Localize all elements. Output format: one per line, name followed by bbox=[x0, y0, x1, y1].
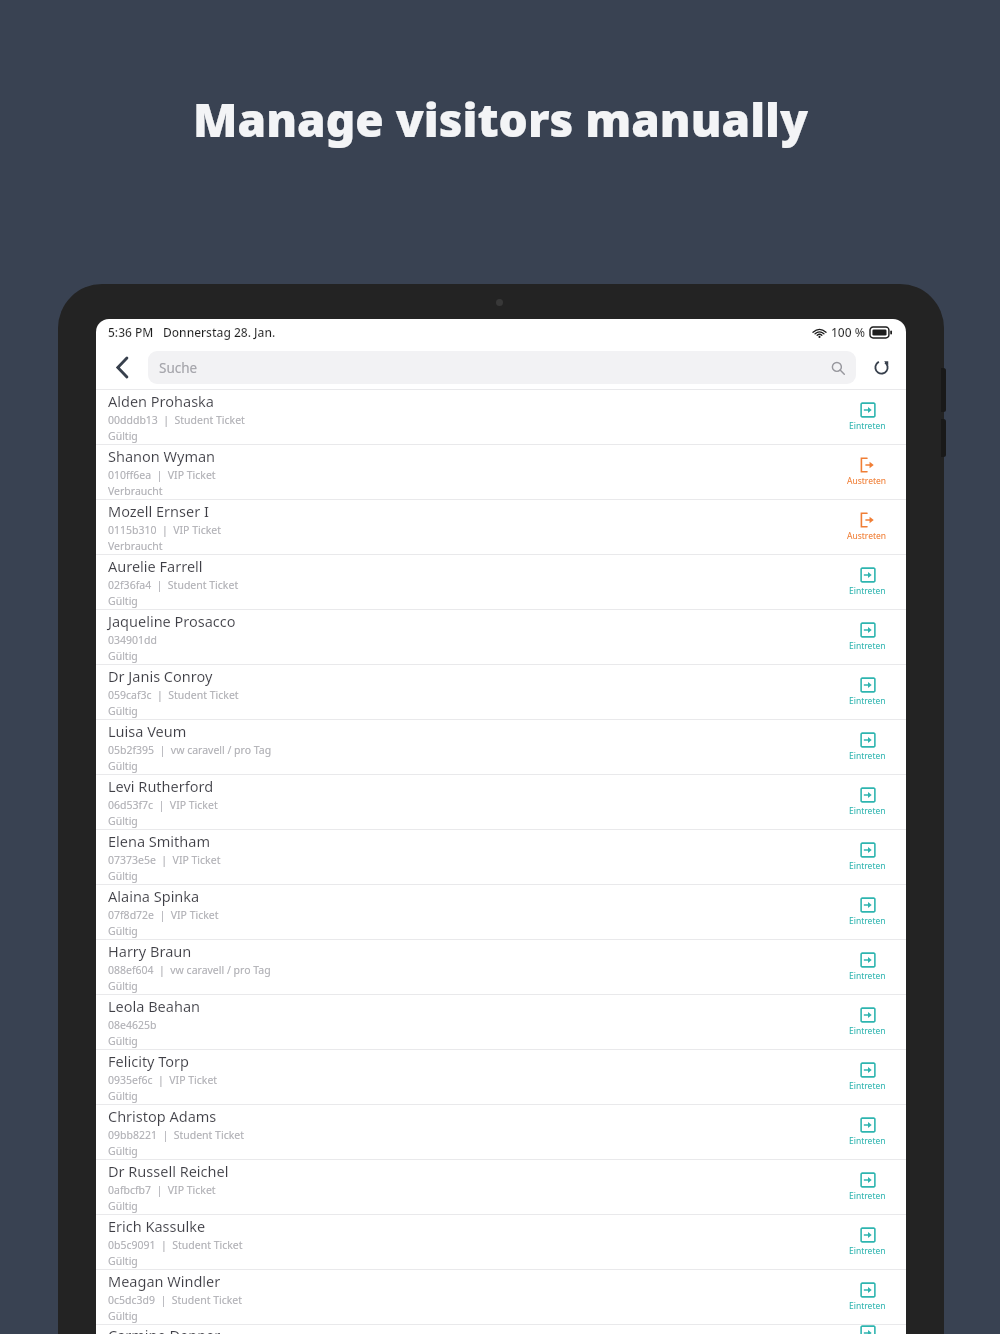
staticText: Austreten bbox=[847, 475, 887, 487]
staticText: Eintreten bbox=[849, 860, 886, 872]
staticText: Aurelie Farrell bbox=[108, 556, 203, 576]
button[interactable]: Eintreten bbox=[828, 1160, 906, 1214]
staticText: 07373e5e | VIP Ticket bbox=[108, 853, 221, 867]
staticText: Gültig bbox=[108, 1034, 138, 1048]
button[interactable]: Eintreten bbox=[828, 555, 906, 609]
button[interactable]: Luisa Veum bbox=[96, 720, 906, 775]
staticText: 100 % bbox=[831, 324, 865, 340]
staticText: 06d53f7c | VIP Ticket bbox=[108, 798, 218, 812]
button[interactable]: Eintreten bbox=[828, 390, 906, 444]
button[interactable]: Erich Kassulke bbox=[96, 1215, 906, 1270]
staticText: Gültig bbox=[108, 1199, 138, 1213]
staticText: Erich Kassulke bbox=[108, 1216, 206, 1236]
button[interactable]: Eintreten bbox=[828, 1215, 906, 1269]
button[interactable]: Dr Janis Conroy bbox=[96, 665, 906, 720]
staticText: Felicity Torp bbox=[108, 1051, 190, 1071]
button[interactable]: Shanon Wyman bbox=[96, 445, 906, 500]
button[interactable]: Eintreten bbox=[828, 1050, 906, 1104]
staticText: 02f36fa4 | Student Ticket bbox=[108, 578, 239, 592]
button[interactable]: Leola Beahan bbox=[96, 995, 906, 1050]
staticText: 088ef604 | vw caravell / pro Tag bbox=[108, 963, 271, 977]
staticText: 059caf3c | Student Ticket bbox=[108, 688, 239, 702]
button[interactable]: Refresh bbox=[856, 345, 906, 389]
staticText: Shanon Wyman bbox=[108, 446, 216, 466]
staticText: 034901dd bbox=[108, 633, 157, 647]
staticText: 0115b310 | VIP Ticket bbox=[108, 523, 222, 537]
button[interactable]: Carmine Depper bbox=[96, 1325, 906, 1334]
staticText: Gültig bbox=[108, 814, 138, 828]
button[interactable]: Eintreten bbox=[828, 885, 906, 939]
staticText: 010ff6ea | VIP Ticket bbox=[108, 468, 216, 482]
button[interactable]: Suche bbox=[148, 351, 856, 384]
staticText: Eintreten bbox=[849, 1080, 886, 1092]
button[interactable]: Elena Smitham bbox=[96, 830, 906, 885]
button[interactable]: Dr Russell Reichel bbox=[96, 1160, 906, 1215]
button[interactable]: Levi Rutherford bbox=[96, 775, 906, 830]
staticText: Alaina Spinka bbox=[108, 886, 200, 906]
staticText: Gültig bbox=[108, 1144, 138, 1158]
button[interactable]: Eintreten bbox=[828, 1325, 906, 1334]
staticText: Mozell Ernser I bbox=[108, 501, 209, 521]
button[interactable]: Alaina Spinka bbox=[96, 885, 906, 940]
button[interactable]: Eintreten bbox=[828, 1105, 906, 1159]
staticText: Gültig bbox=[108, 1254, 138, 1268]
button[interactable]: Eintreten bbox=[828, 940, 906, 994]
staticText: Austreten bbox=[847, 530, 887, 542]
button[interactable]: Eintreten bbox=[828, 610, 906, 664]
staticText: Verbraucht bbox=[108, 539, 163, 553]
staticText: Eintreten bbox=[849, 750, 886, 762]
staticText: Levi Rutherford bbox=[108, 776, 214, 796]
button[interactable]: Eintreten bbox=[828, 995, 906, 1049]
staticText: Elena Smitham bbox=[108, 831, 210, 851]
button[interactable]: Aurelie Farrell bbox=[96, 555, 906, 610]
staticText: Eintreten bbox=[849, 420, 886, 432]
staticText: Eintreten bbox=[849, 915, 886, 927]
staticText: Dr Russell Reichel bbox=[108, 1161, 229, 1181]
staticText: 0b5c9091 | Student Ticket bbox=[108, 1238, 243, 1252]
button[interactable]: Jaqueline Prosacco bbox=[96, 610, 906, 665]
button[interactable]: Eintreten bbox=[828, 665, 906, 719]
staticText: Gültig bbox=[108, 924, 138, 938]
staticText: 00dddb13 | Student Ticket bbox=[108, 413, 245, 427]
staticText: 08e4625b bbox=[108, 1018, 157, 1032]
button[interactable]: Harry Braun bbox=[96, 940, 906, 995]
staticText: Gültig bbox=[108, 429, 138, 443]
staticText: Suche bbox=[159, 359, 198, 377]
button[interactable]: Eintreten bbox=[828, 775, 906, 829]
staticText: Dr Janis Conroy bbox=[108, 666, 213, 686]
button[interactable]: Mozell Ernser I bbox=[96, 500, 906, 555]
staticText: Gültig bbox=[108, 759, 138, 773]
button[interactable]: Eintreten bbox=[828, 1270, 906, 1324]
staticText: Eintreten bbox=[849, 970, 886, 982]
staticText: 09bb8221 | Student Ticket bbox=[108, 1128, 244, 1142]
button[interactable]: Alden Prohaska bbox=[96, 390, 906, 445]
staticText: Leola Beahan bbox=[108, 996, 200, 1016]
staticText: 5:36 PM bbox=[108, 324, 154, 340]
staticText: Gültig bbox=[108, 979, 138, 993]
button[interactable]: Austreten bbox=[828, 500, 906, 554]
button[interactable]: Eintreten bbox=[828, 830, 906, 884]
button[interactable]: Felicity Torp bbox=[96, 1050, 906, 1105]
button[interactable]: Christop Adams bbox=[96, 1105, 906, 1160]
staticText: Eintreten bbox=[849, 805, 886, 817]
button[interactable]: Meagan Windler bbox=[96, 1270, 906, 1325]
staticText: Carmine Depper bbox=[108, 1325, 221, 1334]
staticText: Eintreten bbox=[849, 1025, 886, 1037]
button[interactable]: Back bbox=[96, 345, 148, 389]
staticText: Eintreten bbox=[849, 695, 886, 707]
staticText: Eintreten bbox=[849, 640, 886, 652]
staticText: Verbraucht bbox=[108, 484, 163, 498]
staticText: Harry Braun bbox=[108, 941, 192, 961]
staticText: Luisa Veum bbox=[108, 721, 187, 741]
staticText: Eintreten bbox=[849, 1135, 886, 1147]
staticText: Gültig bbox=[108, 594, 138, 608]
button[interactable]: Eintreten bbox=[828, 720, 906, 774]
staticText: Gültig bbox=[108, 704, 138, 718]
button[interactable]: Austreten bbox=[828, 445, 906, 499]
staticText: 07f8d72e | VIP Ticket bbox=[108, 908, 219, 922]
staticText: Eintreten bbox=[849, 1190, 886, 1202]
staticText: Manage visitors manually bbox=[193, 88, 808, 151]
staticText: Jaqueline Prosacco bbox=[108, 611, 236, 631]
staticText: Meagan Windler bbox=[108, 1271, 221, 1291]
staticText: Christop Adams bbox=[108, 1106, 217, 1126]
